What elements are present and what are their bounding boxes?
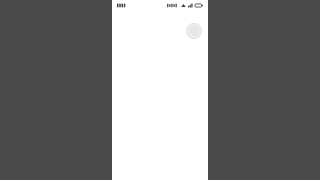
button[interactable]: Account (186, 23, 202, 39)
